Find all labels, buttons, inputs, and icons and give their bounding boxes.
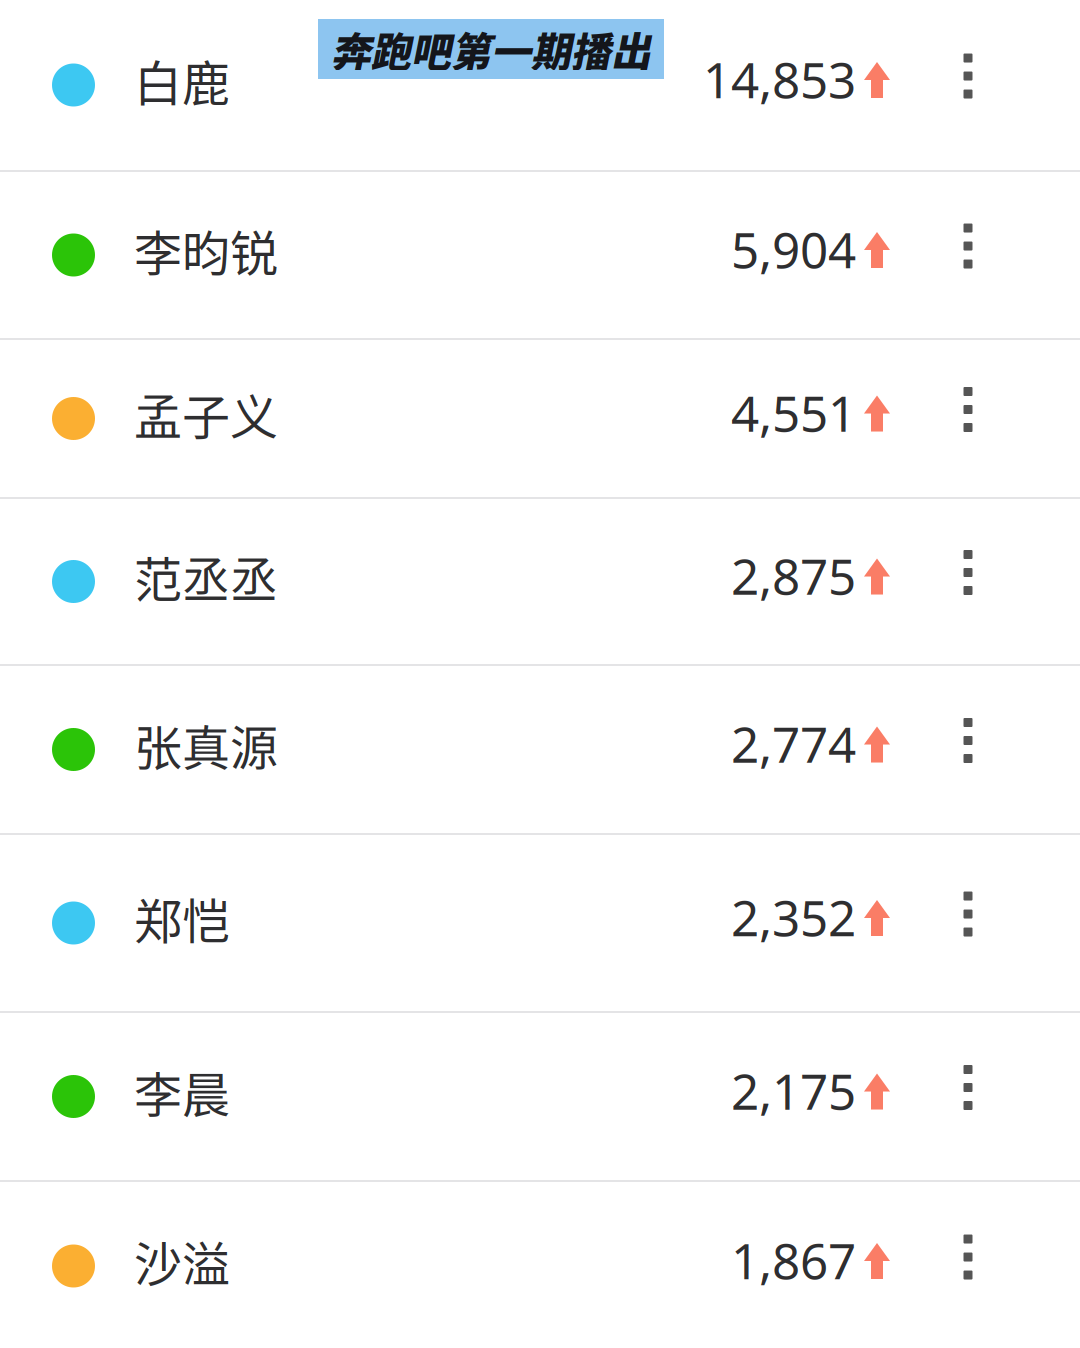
staticText: 2,875 <box>731 542 856 609</box>
staticText: 孟子义 <box>134 379 278 448</box>
button[interactable]: 范丞丞 <box>0 499 1080 664</box>
staticText: 4,551 <box>731 379 856 446</box>
staticText: 2,352 <box>731 883 856 951</box>
staticText: 郑恺 <box>134 883 230 953</box>
staticText: 沙溢 <box>134 1226 230 1296</box>
button[interactable]: More options for 张真源 <box>914 689 1022 809</box>
button[interactable]: More options for 白鹿 <box>914 25 1022 145</box>
button[interactable]: More options for 郑恺 <box>914 863 1022 983</box>
staticText: 14,853 <box>703 45 856 113</box>
staticText: 范丞丞 <box>134 542 278 611</box>
button[interactable]: 白鹿 <box>0 0 1080 170</box>
staticText: 1,867 <box>731 1226 856 1294</box>
button[interactable]: 孟子义 <box>0 340 1080 497</box>
staticText: 李昀锐 <box>134 215 278 285</box>
staticText: 5,904 <box>731 215 856 283</box>
staticText: 张真源 <box>134 710 278 779</box>
staticText: 李晨 <box>134 1057 230 1126</box>
staticText: 白鹿 <box>134 45 230 115</box>
button[interactable]: 郑恺 <box>0 835 1080 1011</box>
staticText: 2,175 <box>731 1057 856 1124</box>
button[interactable]: 沙溢 <box>0 1182 1080 1348</box>
button[interactable]: More options for 范丞丞 <box>914 521 1022 641</box>
button[interactable]: 李昀锐 <box>0 172 1080 338</box>
button[interactable]: 李晨 <box>0 1013 1080 1180</box>
staticText: 奔跑吧第一期播出 <box>331 20 651 78</box>
button[interactable]: More options for 沙溢 <box>914 1206 1022 1326</box>
staticText: 2,774 <box>731 710 856 777</box>
button[interactable]: More options for 孟子义 <box>914 358 1022 478</box>
button[interactable]: More options for 李昀锐 <box>914 195 1022 315</box>
button[interactable]: 奔跑吧第一期播出 <box>318 19 664 79</box>
button[interactable]: More options for 李晨 <box>914 1036 1022 1156</box>
button[interactable]: 张真源 <box>0 666 1080 833</box>
